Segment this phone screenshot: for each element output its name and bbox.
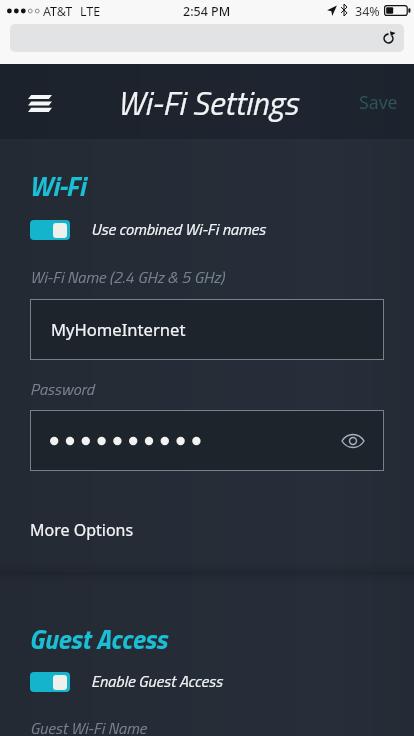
button[interactable]: Menu [18, 81, 62, 125]
staticText: 2:54 PM [183, 3, 231, 20]
button[interactable]: Toggle [30, 217, 266, 242]
staticText: Wi-Fi Settings [117, 78, 298, 128]
other: Reload page [381, 31, 396, 46]
staticText: 34% [355, 3, 380, 20]
staticText: LTE [80, 3, 101, 20]
button[interactable]: More Options [22, 513, 142, 547]
button[interactable]: Toggle [30, 672, 70, 692]
staticText: Wi-Fi Name (2.4 GHz & 5 GHz) [30, 265, 224, 290]
button[interactable]: Reload page [10, 24, 404, 52]
staticText: More Options [30, 519, 134, 541]
staticText: Password [30, 377, 94, 402]
button[interactable]: Toggle [30, 220, 70, 240]
button[interactable]: MyHomeInternet [30, 299, 384, 360]
button[interactable]: Show password [30, 410, 384, 471]
staticText: AT&T [43, 3, 73, 20]
button[interactable]: Save [349, 81, 408, 123]
staticText: MyHomeInternet [51, 318, 186, 341]
staticText: Use combined Wi-Fi names [91, 217, 266, 242]
other: Show password [342, 434, 364, 448]
staticText: Save [359, 90, 398, 114]
staticText: Guest Wi-Fi Name [30, 716, 147, 736]
staticText: Wi-Fi [29, 165, 86, 206]
staticText: Enable Guest Access [91, 669, 223, 694]
button[interactable]: Toggle [30, 669, 223, 694]
staticText: Guest Access [29, 619, 168, 659]
